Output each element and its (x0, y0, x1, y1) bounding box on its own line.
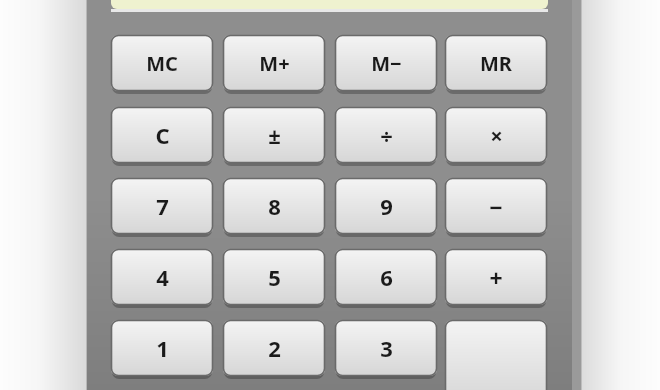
button[interactable]: Equals (445, 321, 547, 390)
staticText: ± (268, 120, 281, 150)
staticText: C (155, 120, 170, 150)
staticText: 6 (380, 262, 393, 292)
button[interactable]: + (445, 250, 547, 306)
button[interactable]: C (111, 108, 213, 164)
button[interactable]: 5 (223, 250, 325, 306)
button[interactable]: M− (335, 36, 437, 92)
staticText: − (489, 191, 503, 222)
staticText: 3 (380, 333, 393, 363)
button[interactable]: × (445, 108, 547, 164)
staticText: MR (480, 50, 512, 77)
button[interactable]: 4 (111, 250, 213, 306)
button[interactable]: M+ (223, 36, 325, 92)
button[interactable]: − (445, 179, 547, 235)
staticText: M+ (259, 50, 290, 77)
staticText: M− (371, 50, 402, 77)
staticText: × (490, 120, 503, 150)
staticText: + (489, 262, 503, 293)
button[interactable]: 2 (223, 321, 325, 377)
button[interactable]: 1 (111, 321, 213, 377)
staticText: 9 (380, 191, 393, 221)
staticText: ÷ (380, 120, 393, 150)
button[interactable]: ± (223, 108, 325, 164)
staticText: MC (146, 50, 178, 77)
button[interactable]: 7 (111, 179, 213, 235)
button[interactable]: MC (111, 36, 213, 92)
staticText: 8 (268, 191, 281, 221)
staticText: 5 (268, 262, 281, 292)
staticText: 1 (156, 333, 169, 363)
button[interactable]: 6 (335, 250, 437, 306)
button[interactable]: MR (445, 36, 547, 92)
button[interactable]: 8 (223, 179, 325, 235)
staticText: 2 (268, 333, 281, 363)
button[interactable]: 3 (335, 321, 437, 377)
button[interactable]: ÷ (335, 108, 437, 164)
staticText: 4 (156, 262, 169, 292)
staticText: 7 (156, 191, 169, 221)
button[interactable]: 9 (335, 179, 437, 235)
